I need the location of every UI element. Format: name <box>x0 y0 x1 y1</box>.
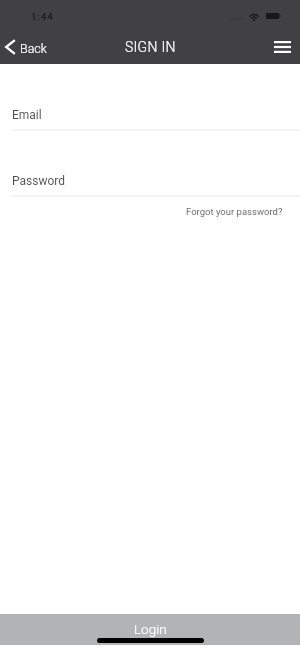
staticText: 1:44 <box>31 11 54 22</box>
staticText: Email <box>12 108 42 122</box>
staticText: Login <box>134 621 167 637</box>
staticText: Back <box>20 41 47 56</box>
staticText: SIGN IN <box>125 39 176 55</box>
staticText: Forgot your password? <box>186 206 283 217</box>
button[interactable]: Login <box>0 614 300 645</box>
button[interactable]: Back <box>0 36 55 62</box>
staticText: Password <box>12 174 66 188</box>
button[interactable]: Forgot your password? <box>0 206 283 217</box>
button[interactable]: Menu <box>268 34 296 60</box>
